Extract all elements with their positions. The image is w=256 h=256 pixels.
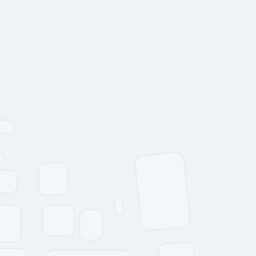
- button[interactable]: Card 1: [0, 120, 14, 133]
- button[interactable]: Card 5: [0, 248, 26, 256]
- button[interactable]: Card 7: [42, 205, 74, 236]
- button[interactable]: Card 9: [115, 200, 123, 214]
- button[interactable]: Card 2: [0, 153, 3, 164]
- button[interactable]: Card 11: [46, 250, 131, 256]
